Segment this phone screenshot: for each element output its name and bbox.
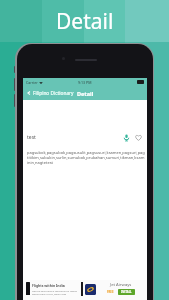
button[interactable]: Favorite <box>134 133 143 142</box>
staticText: 9:13 PM <box>78 80 92 85</box>
staticText: within India. Hurry, Book Now! <box>32 292 67 295</box>
button[interactable]: Speak <box>122 133 131 142</box>
staticText: Flights within India <box>32 283 65 288</box>
staticText: Carrier <box>26 80 38 85</box>
staticText: pagsubok,pagsubok,pagsusulit,pagsusuri,k… <box>27 150 145 165</box>
button[interactable]: Flights within India <box>23 280 147 300</box>
staticText: Detail <box>56 7 114 36</box>
staticText: Get the best rates & discounts on flight… <box>32 289 77 292</box>
staticText: FREE <box>107 290 114 294</box>
staticText: Filipino Dictionary <box>33 90 74 97</box>
staticText: Jet Airways <box>110 282 132 288</box>
staticText: test <box>27 134 36 141</box>
staticText: INSTALL <box>121 290 132 294</box>
staticText: Detail <box>77 90 94 97</box>
button[interactable]: Back to Filipino Dictionary <box>23 86 74 100</box>
